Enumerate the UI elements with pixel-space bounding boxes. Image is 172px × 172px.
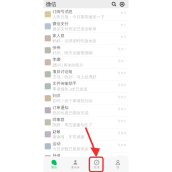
staticText: 王强：收到，马上处理好 [52,74,96,79]
staticText: 文件传输助手 [52,81,76,86]
staticText: 昨天 [121,35,127,39]
staticText: 星期日 [118,83,127,87]
staticText: 通讯录 [71,166,80,169]
button[interactable]: 更多 [118,0,126,8]
staticText: 晚上一起吃饭吗 [52,158,80,163]
staticText: 星期五 [118,119,127,123]
staticText: 微信支付 [52,21,68,26]
staticText: 运动 [52,141,60,146]
staticText: 陈静：周五团建别忘了 [52,122,92,127]
staticText: 孙倩 [52,153,60,158]
staticText: 发现 [94,166,100,169]
button[interactable]: 订单通知 [43,104,128,116]
staticText: 家人群 [52,33,64,38]
staticText: 星期三 [118,155,127,159]
staticText: 微信支付凭证已送达账单 [52,26,96,31]
button[interactable]: 李娜 [43,56,128,68]
button[interactable]: 孙倩 [43,152,128,164]
button[interactable]: 项目讨论组 [43,68,128,80]
button[interactable]: 家人群 [43,32,128,44]
button[interactable]: 运动 [43,140,128,152]
staticText: 李娜 [52,57,60,62]
button[interactable]: 微信 [43,156,65,172]
staticText: 昨天 [121,11,127,15]
staticText: 同事群 [52,117,64,122]
staticText: 星期四 [118,143,127,147]
staticText: 星期六 [118,107,127,111]
staticText: 项目讨论组 [52,69,72,74]
staticText: 星期一 [118,47,127,51]
staticText: 昨天 [121,23,127,27]
staticText: 星期日 [118,71,127,75]
button[interactable]: 同事群 [43,116,128,128]
button[interactable]: 我 [107,156,128,172]
staticText: 订单通知 [52,105,68,110]
staticText: 今日步数已更新排名 [52,146,88,151]
button[interactable]: 订阅号消息 [43,8,128,20]
staticText: 张伟 [52,45,60,50]
staticText: 星期四 [118,131,127,135]
staticText: 微信 [46,1,56,8]
staticText: 您的包裹已签收完成 [52,110,88,115]
staticText: 人民日报：今日要闻速览一下 [52,14,104,19]
button[interactable]: 赵敏 [43,128,128,140]
staticText: 赵敏 [52,129,60,134]
staticText: 妈妈：记得按时吃饭休息 [52,38,96,43]
staticText: 订阅号消息 [52,9,72,14]
staticText: 谢谢啦，非常感谢 [52,134,84,139]
staticText: 星期一 [118,59,127,63]
button[interactable]: 刘洋 [43,92,128,104]
staticText: 好的，明天见面再细聊 [52,50,92,55]
staticText: 微信 [51,166,57,169]
button[interactable]: 张伟 [43,44,128,56]
button[interactable]: 搜索 [110,0,118,8]
staticText: [图片] 周末的照片 [52,62,83,68]
button[interactable]: 文件传输助手 [43,80,128,92]
button[interactable]: 微信支付 [43,20,128,32]
button[interactable]: 通讯录 [65,156,86,172]
staticText: 星期六 [118,95,127,99]
staticText: 刘洋 [52,93,60,98]
staticText: 在吗？有个事情想问你 [52,98,92,103]
button[interactable]: 发现 [86,156,107,172]
staticText: 季度报告.pdf 已发送 [52,86,87,92]
staticText: 我 [116,166,119,169]
